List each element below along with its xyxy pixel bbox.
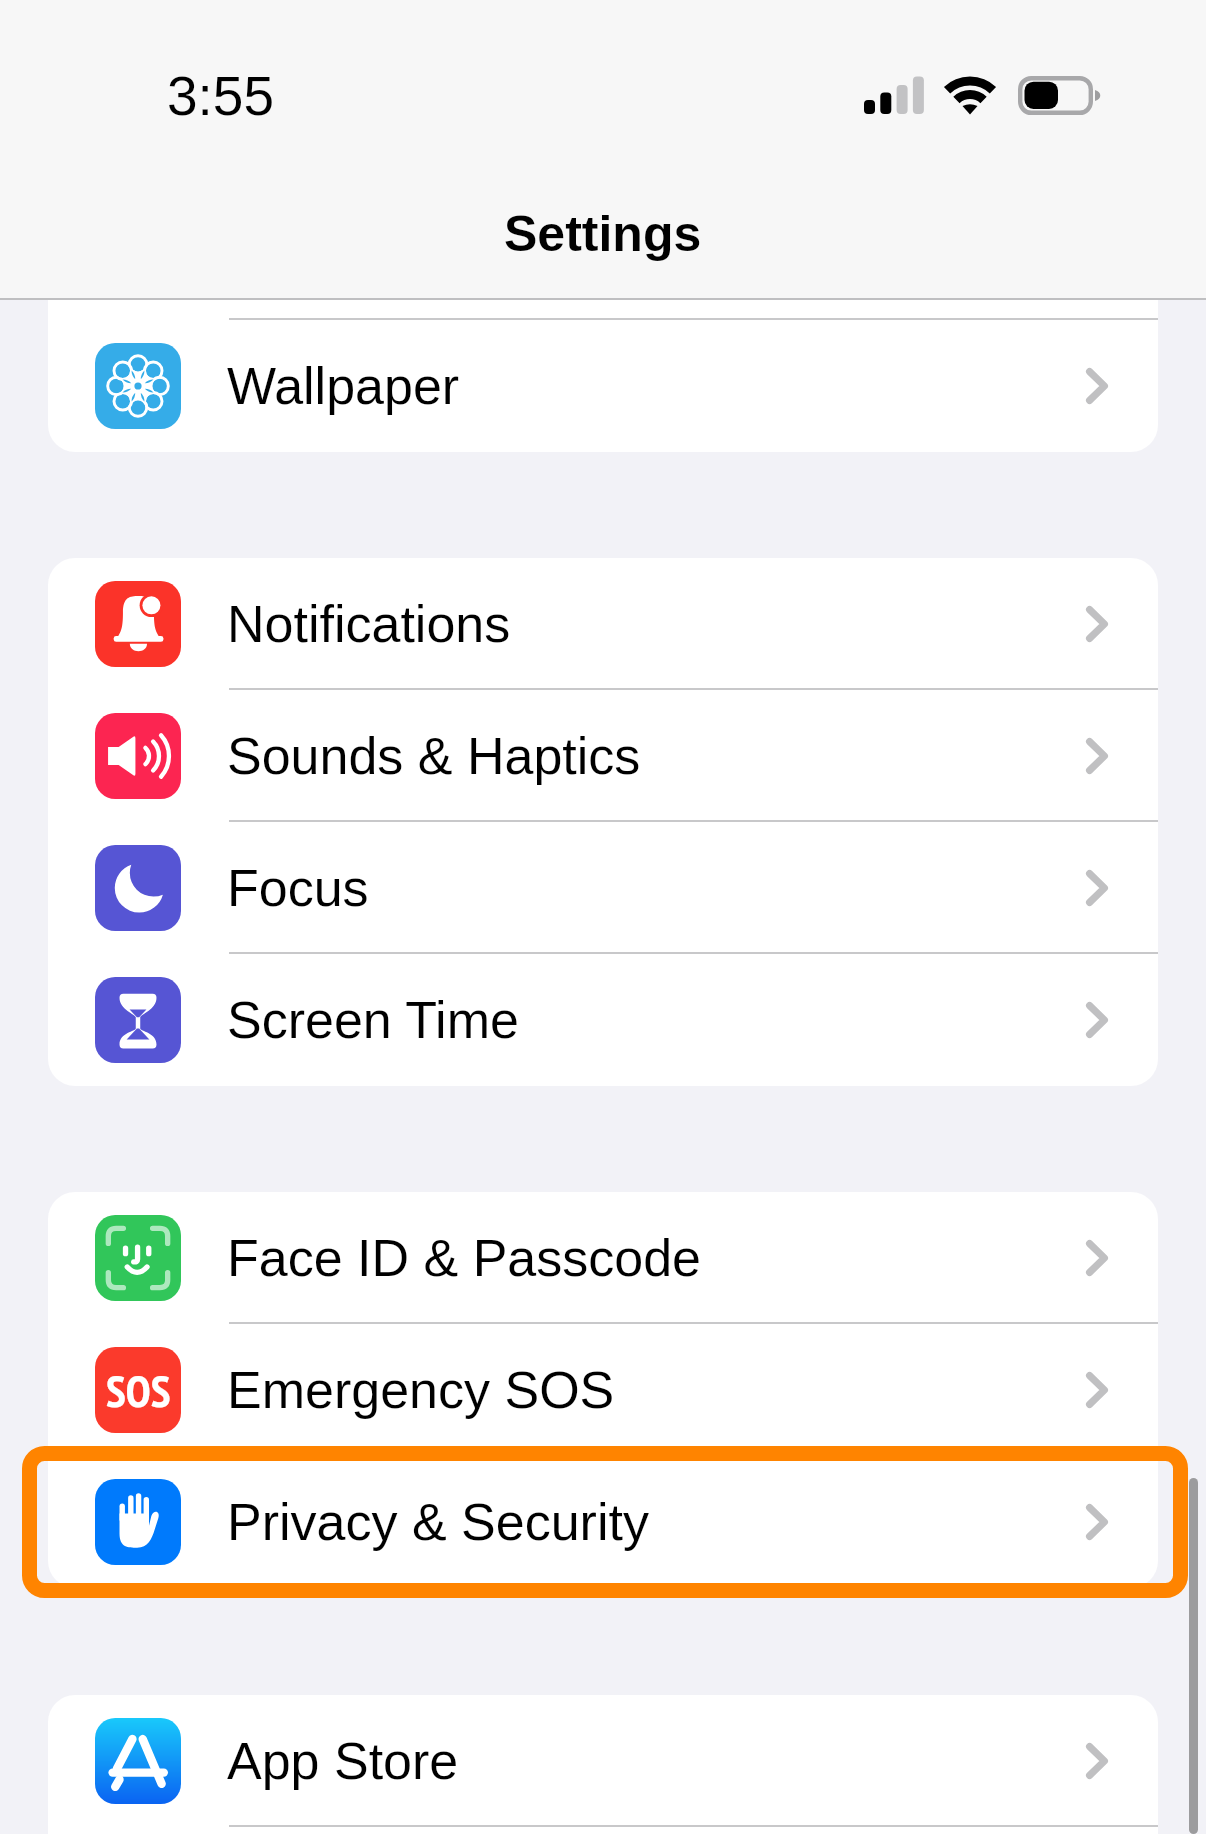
staticText: Emergency SOS [227, 1361, 615, 1419]
other: Open [1086, 1372, 1108, 1408]
other: Open [1086, 1504, 1108, 1540]
other: Open [1086, 870, 1108, 906]
staticText: Settings [504, 206, 702, 262]
button[interactable]: SOS [48, 1324, 1158, 1456]
staticText: 3:55 [167, 65, 275, 126]
other: Open [1086, 1002, 1108, 1038]
staticText: App Store [227, 1732, 459, 1790]
other: Open [1086, 606, 1108, 642]
staticText: Sounds & Haptics [227, 727, 641, 785]
other: Open [1086, 1240, 1108, 1276]
other: Open [1086, 1743, 1108, 1779]
staticText: Focus [227, 859, 369, 917]
button[interactable]: App Store [48, 1695, 1158, 1827]
button[interactable]: Focus [48, 822, 1158, 954]
button[interactable]: Face ID & Passcode [48, 1192, 1158, 1324]
other: Open [1086, 368, 1108, 404]
button[interactable]: Sounds & Haptics [48, 690, 1158, 822]
button[interactable]: Wallpaper [48, 300, 1158, 452]
other: Highlighted row [22, 1446, 1188, 1598]
other: Open [1086, 738, 1108, 774]
staticText: Wallpaper [227, 357, 460, 415]
staticText: Notifications [227, 595, 511, 653]
staticText: Face ID & Passcode [227, 1229, 701, 1287]
staticText: Screen Time [227, 991, 519, 1049]
staticText: SOS [106, 1361, 171, 1419]
staticText: Privacy & Security [227, 1493, 649, 1551]
button[interactable]: Screen Time [48, 954, 1158, 1086]
button[interactable]: Privacy & Security [48, 1456, 1158, 1588]
button[interactable]: Notifications [48, 558, 1158, 690]
